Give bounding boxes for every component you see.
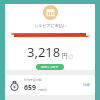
staticText: 659 (24, 83, 37, 93)
staticText: 付与予定の額 (24, 78, 43, 82)
staticText: 支払い完了 (41, 66, 59, 68)
staticText: シルビアに支払い (34, 23, 67, 28)
staticText: 詳細 (83, 83, 90, 87)
button[interactable]: 詳細 (82, 82, 91, 88)
staticText: 円 (62, 52, 68, 60)
staticText: 円相当 (38, 88, 47, 92)
other: Store (43, 5, 58, 20)
button[interactable]: Points (5, 75, 95, 95)
button[interactable]: 支払い完了 (36, 64, 64, 70)
staticText: 3,218 (27, 43, 61, 61)
other: Points (9, 80, 20, 91)
other: Info (69, 55, 73, 59)
